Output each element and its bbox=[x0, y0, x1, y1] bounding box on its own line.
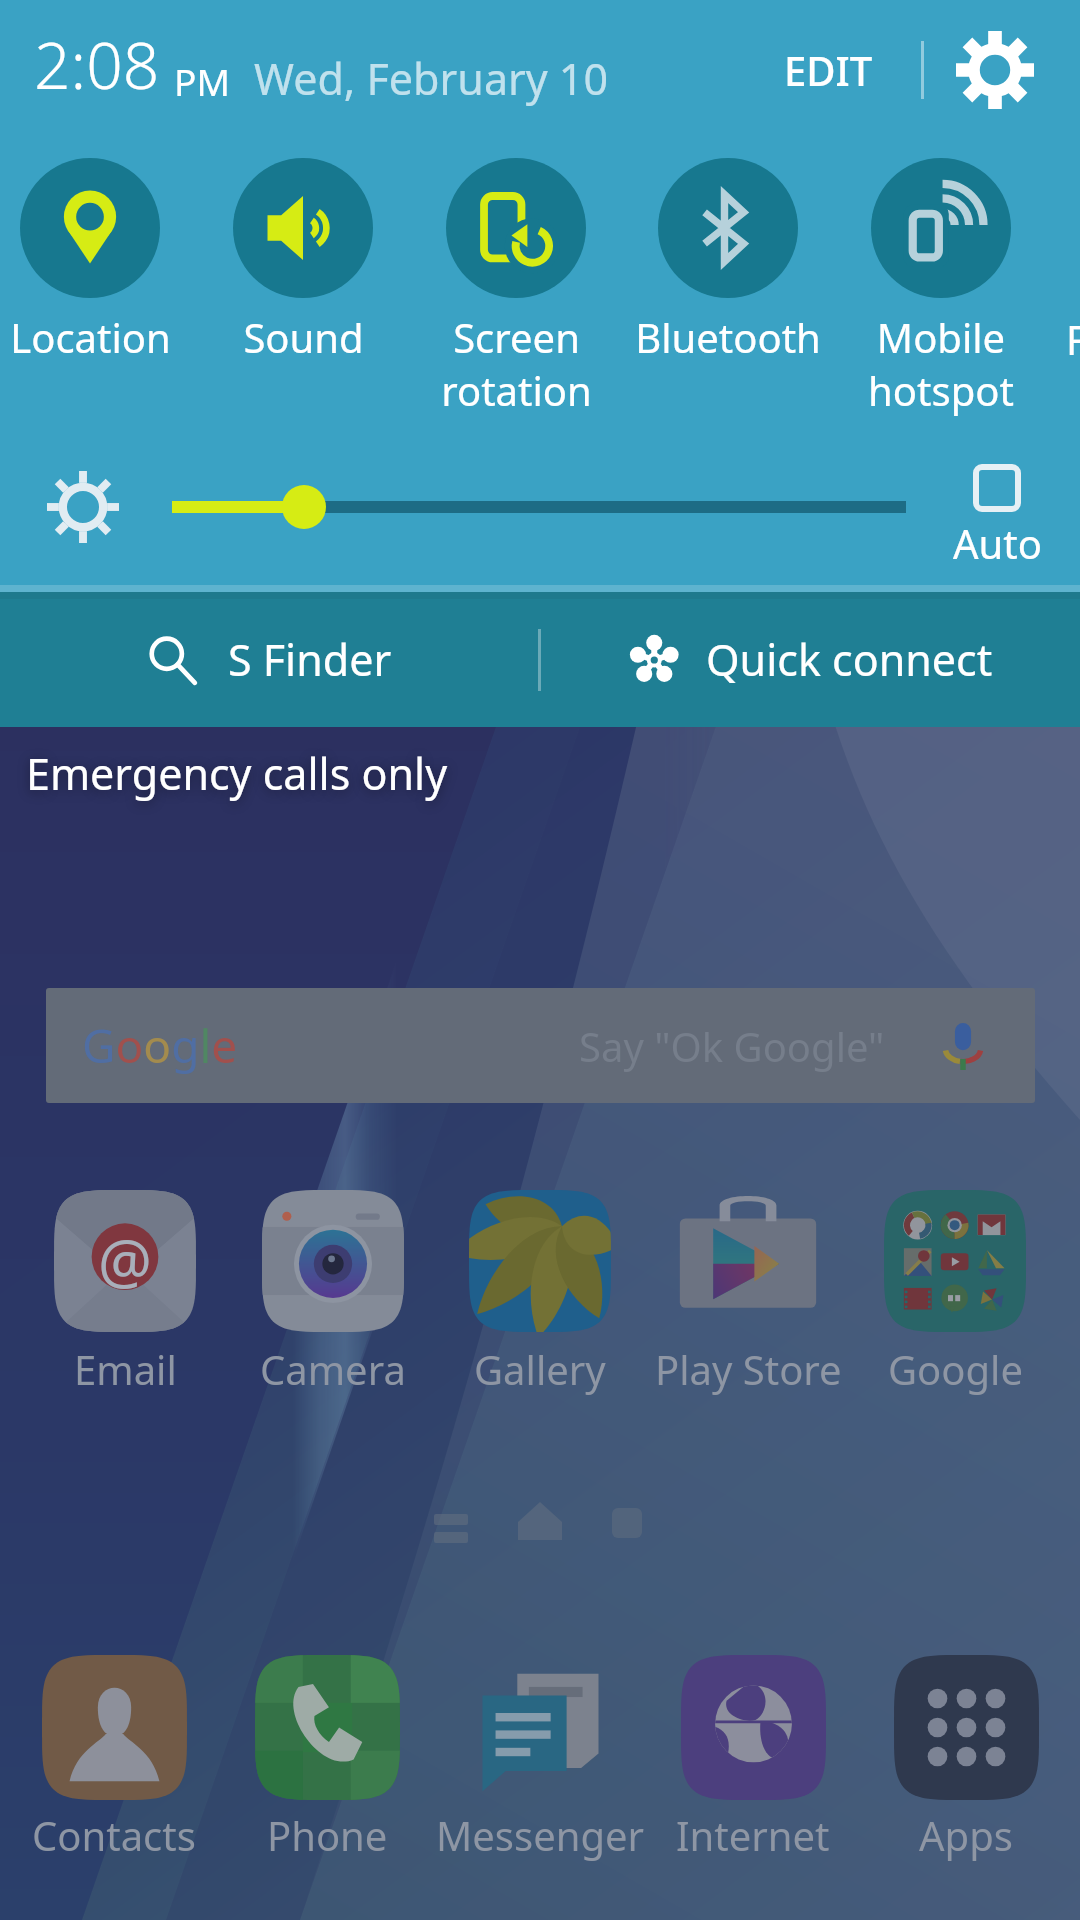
button[interactable]: Apps bbox=[860, 1655, 1072, 1862]
staticText: Mobile hotspot bbox=[868, 310, 1014, 418]
staticText: Google bbox=[82, 1014, 238, 1077]
button[interactable]: Settings bbox=[940, 15, 1050, 125]
staticText: Apps bbox=[919, 1808, 1013, 1862]
staticText: Camera bbox=[260, 1342, 406, 1396]
button[interactable]: Sound bbox=[197, 158, 409, 364]
staticText: Flash bbox=[1066, 312, 1080, 366]
button[interactable]: Google bbox=[852, 1190, 1058, 1396]
button[interactable]: Phone bbox=[221, 1655, 433, 1862]
staticText: Email bbox=[74, 1342, 177, 1396]
button[interactable]: Brightness bbox=[38, 462, 128, 552]
staticText: Gallery bbox=[474, 1342, 606, 1396]
button[interactable]: Auto bbox=[940, 464, 1054, 570]
staticText: Internet bbox=[676, 1808, 830, 1862]
button[interactable]: Brightness slider bbox=[150, 462, 940, 552]
staticText: Google bbox=[888, 1342, 1023, 1396]
button[interactable]: Quick connect bbox=[541, 592, 1080, 727]
staticText: Wed, February 10 bbox=[254, 49, 609, 108]
staticText: Auto bbox=[953, 516, 1042, 570]
staticText: Messenger bbox=[436, 1808, 645, 1862]
staticText: Screen rotation bbox=[441, 310, 592, 418]
button[interactable]: S Finder bbox=[0, 592, 538, 727]
button[interactable]: Play Store bbox=[645, 1190, 851, 1396]
button[interactable]: Mobile hotspot bbox=[835, 158, 1047, 418]
staticText: Quick connect bbox=[706, 630, 993, 689]
button[interactable]: Messenger bbox=[434, 1655, 646, 1862]
button[interactable]: @ bbox=[22, 1190, 228, 1396]
staticText: Phone bbox=[267, 1808, 388, 1862]
button[interactable]: Contacts bbox=[8, 1655, 220, 1862]
button[interactable]: EDIT bbox=[762, 0, 895, 140]
button[interactable]: Location bbox=[0, 158, 196, 364]
button[interactable]: Bluetooth bbox=[622, 158, 834, 364]
staticText: Emergency calls only bbox=[26, 744, 448, 803]
staticText: Location bbox=[10, 310, 171, 364]
staticText: Sound bbox=[243, 310, 364, 364]
staticText: 2:08 bbox=[34, 21, 160, 108]
button[interactable]: Camera bbox=[230, 1190, 436, 1396]
staticText: Play Store bbox=[655, 1342, 842, 1396]
button[interactable]: Gallery bbox=[437, 1190, 643, 1396]
staticText: Say "Ok Google" bbox=[579, 1019, 885, 1073]
staticText: Bluetooth bbox=[635, 310, 821, 364]
staticText: S Finder bbox=[228, 630, 392, 689]
staticText: EDIT bbox=[784, 43, 873, 97]
staticText: Contacts bbox=[32, 1808, 196, 1862]
button[interactable]: Screen rotation bbox=[410, 158, 622, 418]
staticText: @ bbox=[98, 1219, 152, 1301]
button[interactable]: Google bbox=[46, 988, 1035, 1103]
staticText: PM bbox=[174, 56, 230, 106]
button[interactable]: Internet bbox=[647, 1655, 859, 1862]
